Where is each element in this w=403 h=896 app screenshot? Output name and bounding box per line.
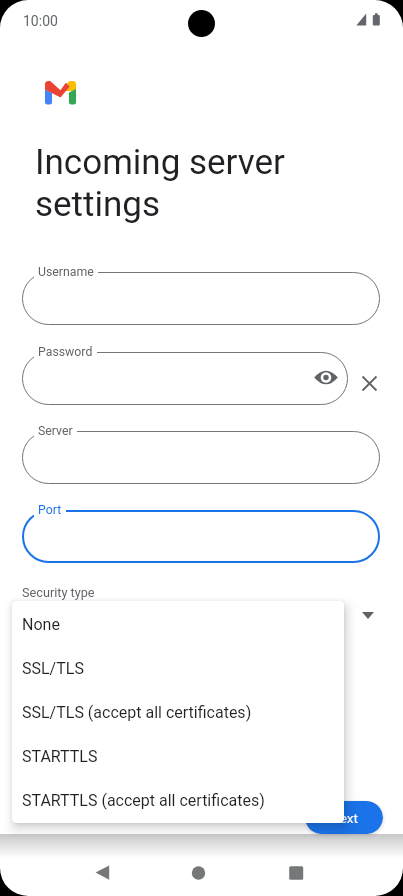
staticText: None <box>22 615 60 634</box>
button[interactable]: SSL/TLS <box>12 645 344 689</box>
staticText: SSL/TLS <box>22 659 84 678</box>
button[interactable] <box>22 352 348 405</box>
button[interactable] <box>22 510 380 563</box>
staticText: Incoming server settings <box>35 142 285 225</box>
staticText: Server <box>38 424 73 438</box>
button[interactable]: STARTTLS (accept all certificates) <box>12 777 344 821</box>
staticText: Next <box>330 810 358 826</box>
button[interactable] <box>22 431 380 484</box>
button[interactable]: None <box>12 601 344 645</box>
button[interactable] <box>274 855 319 896</box>
staticText: Username <box>38 265 94 279</box>
staticText: Security type <box>22 585 95 600</box>
button[interactable] <box>176 855 221 896</box>
button[interactable] <box>360 374 379 393</box>
button[interactable]: Next <box>305 801 383 834</box>
button[interactable]: STARTTLS <box>12 733 344 777</box>
button[interactable]: SSL/TLS (accept all certificates) <box>12 689 344 733</box>
staticText: Port <box>38 503 62 517</box>
staticText: 10:00 <box>23 13 58 29</box>
button[interactable] <box>22 272 380 325</box>
staticText: STARTTLS (accept all certificates) <box>22 791 265 810</box>
button[interactable] <box>80 855 125 896</box>
button[interactable] <box>358 608 378 622</box>
button[interactable] <box>314 369 338 386</box>
staticText: SSL/TLS (accept all certificates) <box>22 703 252 722</box>
staticText: Password <box>38 345 93 359</box>
staticText: STARTTLS <box>22 747 98 766</box>
